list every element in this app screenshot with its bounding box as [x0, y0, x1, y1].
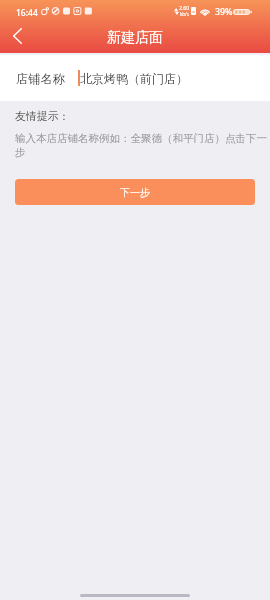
staticText: 下一步: [120, 186, 150, 199]
button[interactable]: 下一步: [15, 179, 255, 205]
button[interactable]: Back: [3, 22, 31, 50]
staticText: 店铺名称: [16, 71, 66, 86]
staticText: 16:44: [16, 7, 38, 19]
staticText: kb/s: [180, 11, 189, 17]
button[interactable]: 店铺名称: [0, 55, 270, 101]
staticText: 2.60: [179, 4, 190, 11]
staticText: 39%: [215, 6, 233, 18]
staticText: 北京烤鸭（前门店）: [80, 71, 188, 86]
staticText: 输入本店店铺名称例如：全聚德（和平门店）点击下一步: [15, 132, 270, 159]
staticText: 友情提示：: [15, 110, 70, 124]
staticText: 新建店面: [107, 29, 163, 47]
